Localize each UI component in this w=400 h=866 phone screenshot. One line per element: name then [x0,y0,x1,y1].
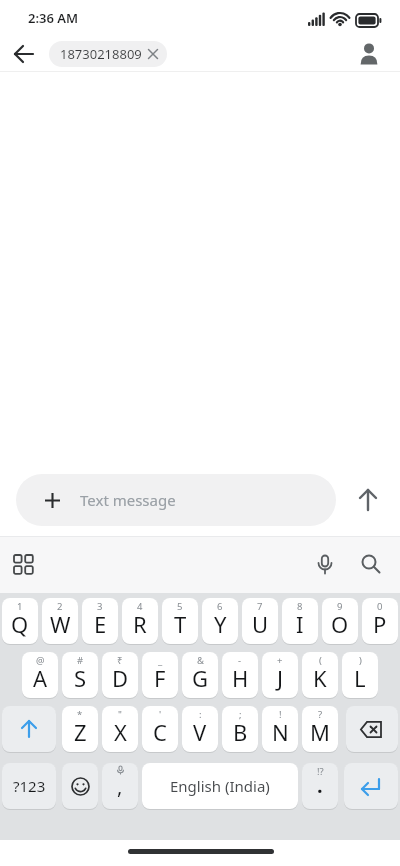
staticText: 8 [297,600,303,613]
button[interactable] [2,706,56,752]
button[interactable]: - [222,652,258,698]
button[interactable]: 9 [322,598,358,644]
button[interactable] [14,44,34,64]
button[interactable]: 6 [202,598,238,644]
button[interactable] [356,488,380,512]
button[interactable]: ( [302,652,338,698]
button[interactable] [358,43,380,65]
staticText: E [94,609,107,639]
staticText: G [192,663,209,693]
staticText: B [233,717,248,747]
staticText: * [77,708,83,721]
staticText: S [74,663,87,693]
staticText: 3 [97,600,103,613]
staticText: Y [214,609,227,639]
staticText: H [232,663,249,693]
staticText: ( [319,654,322,667]
button[interactable]: 8 [282,598,318,644]
staticText: X [114,717,127,747]
button[interactable]: 0 [362,598,398,644]
staticText: ) [359,654,362,667]
staticText: 6 [217,600,223,613]
staticText: I [296,609,304,639]
staticText: + [277,654,283,667]
button[interactable]: 2 [42,598,78,644]
staticText: 7 [257,600,263,613]
staticText: V [193,717,207,747]
button[interactable]: 7 [242,598,278,644]
staticText: D [112,663,129,693]
button[interactable]: ? [302,706,338,752]
staticText: ? [318,708,323,721]
staticText: J [277,663,284,693]
button[interactable]: 18730218809 [49,41,167,67]
staticText: English (India) [170,776,270,796]
button[interactable]: _ [142,652,178,698]
staticText: 4 [137,600,143,613]
button[interactable]: & [182,652,218,698]
staticText: O [331,609,349,639]
staticText: ; [239,708,242,721]
staticText: M [310,717,330,747]
staticText: ' [159,708,162,721]
staticText: F [154,663,166,693]
staticText: !? [317,765,324,778]
staticText: Z [74,717,87,747]
staticText: , [117,773,123,800]
staticText: 18730218809 [60,45,142,63]
staticText: L [354,663,366,693]
staticText: ₹ [117,654,123,667]
staticText: Text message [80,490,176,510]
staticText: C [153,717,167,747]
button[interactable]: ! [262,706,298,752]
staticText: N [272,717,289,747]
button[interactable]: 1 [2,598,38,644]
button[interactable] [315,555,335,575]
button[interactable]: + [262,652,298,698]
staticText: # [77,654,84,667]
button[interactable]: ₹ [102,652,138,698]
staticText: 2:36 AM [28,9,79,27]
staticText: 5 [177,600,183,613]
button[interactable] [344,763,398,809]
staticText: U [252,609,269,639]
staticText: T [174,609,187,639]
button[interactable]: English (India) [142,763,298,809]
button[interactable] [361,554,382,575]
staticText: R [133,609,147,639]
staticText: & [197,654,204,667]
button[interactable]: Text message [16,474,336,526]
button[interactable]: ' [142,706,178,752]
staticText: ?123 [13,776,46,796]
button[interactable]: 5 [162,598,198,644]
staticText: _ [158,654,163,667]
staticText: 9 [337,600,343,613]
button[interactable] [346,706,398,752]
button[interactable] [62,763,98,809]
button[interactable]: , [102,763,138,809]
button[interactable]: !? [302,763,338,809]
button[interactable]: " [102,706,138,752]
staticText: A [33,663,48,693]
button[interactable]: ?123 [2,763,56,809]
button[interactable] [14,555,34,575]
button[interactable]: * [62,706,98,752]
staticText: 1 [17,600,23,613]
staticText: W [50,609,71,639]
button[interactable]: ) [342,652,378,698]
staticText: 2 [57,600,63,613]
staticText: @ [36,654,45,667]
staticText: ! [279,708,282,721]
staticText: : [199,708,202,721]
button[interactable]: ; [222,706,258,752]
button[interactable]: @ [22,652,58,698]
staticText: - [238,654,242,667]
staticText: K [313,663,327,693]
button[interactable]: : [182,706,218,752]
button[interactable]: 4 [122,598,158,644]
staticText: P [373,609,387,639]
staticText: . [317,772,323,799]
button[interactable]: # [62,652,98,698]
staticText: " [118,708,122,721]
button[interactable]: 3 [82,598,118,644]
